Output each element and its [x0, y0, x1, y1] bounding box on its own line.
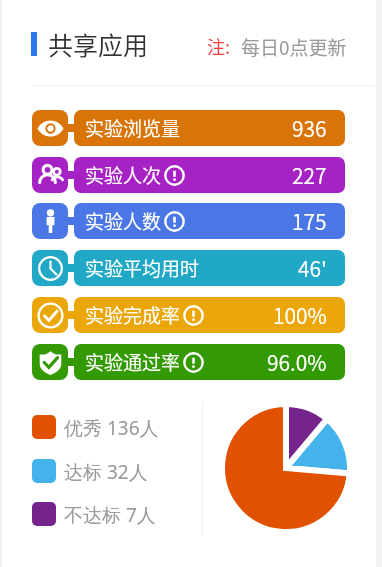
staticText: 实验人次 [85, 161, 162, 189]
button[interactable]: 优秀 136人 [32, 415, 159, 439]
button[interactable]: 实验浏览量 [32, 110, 68, 146]
staticText: 优秀 136人 [64, 415, 159, 439]
button[interactable]: 实验人次 [74, 157, 345, 193]
staticText: 实验通过率 [85, 348, 181, 376]
button[interactable]: 实验人数 [74, 203, 345, 239]
staticText: 175 [292, 206, 327, 236]
staticText: 100% [273, 300, 327, 330]
staticText: 每日0点更新 [241, 33, 347, 61]
staticText: 实验人数 [85, 207, 162, 235]
button[interactable]: 实验完成率 [32, 297, 68, 333]
staticText: 46' [298, 253, 327, 283]
staticText: 实验完成率 [85, 301, 181, 329]
staticText: 不达标 7人 [64, 502, 156, 526]
staticText: 共享应用 [48, 26, 149, 62]
staticText: 达标 32人 [64, 459, 148, 483]
staticText: 实验平均用时 [85, 254, 200, 282]
button[interactable]: 不达标 7人 [32, 502, 156, 526]
staticText: 936 [292, 113, 327, 143]
button[interactable]: 实验浏览量 [74, 110, 345, 146]
button[interactable]: 实验人次 [32, 157, 68, 193]
staticText: 注: [207, 33, 231, 59]
button[interactable]: 实验平均用时 [32, 250, 68, 286]
button[interactable]: 实验通过率 [32, 344, 68, 380]
button[interactable]: 实验平均用时 [74, 250, 345, 286]
staticText: 96.0% [267, 347, 327, 377]
button[interactable]: 实验完成率 [74, 297, 345, 333]
button[interactable]: 达标 32人 [32, 459, 148, 483]
staticText: 227 [292, 160, 327, 190]
button[interactable]: 实验人数 [32, 203, 68, 239]
button[interactable]: 实验通过率 [74, 344, 345, 380]
staticText: 实验浏览量 [85, 114, 181, 142]
